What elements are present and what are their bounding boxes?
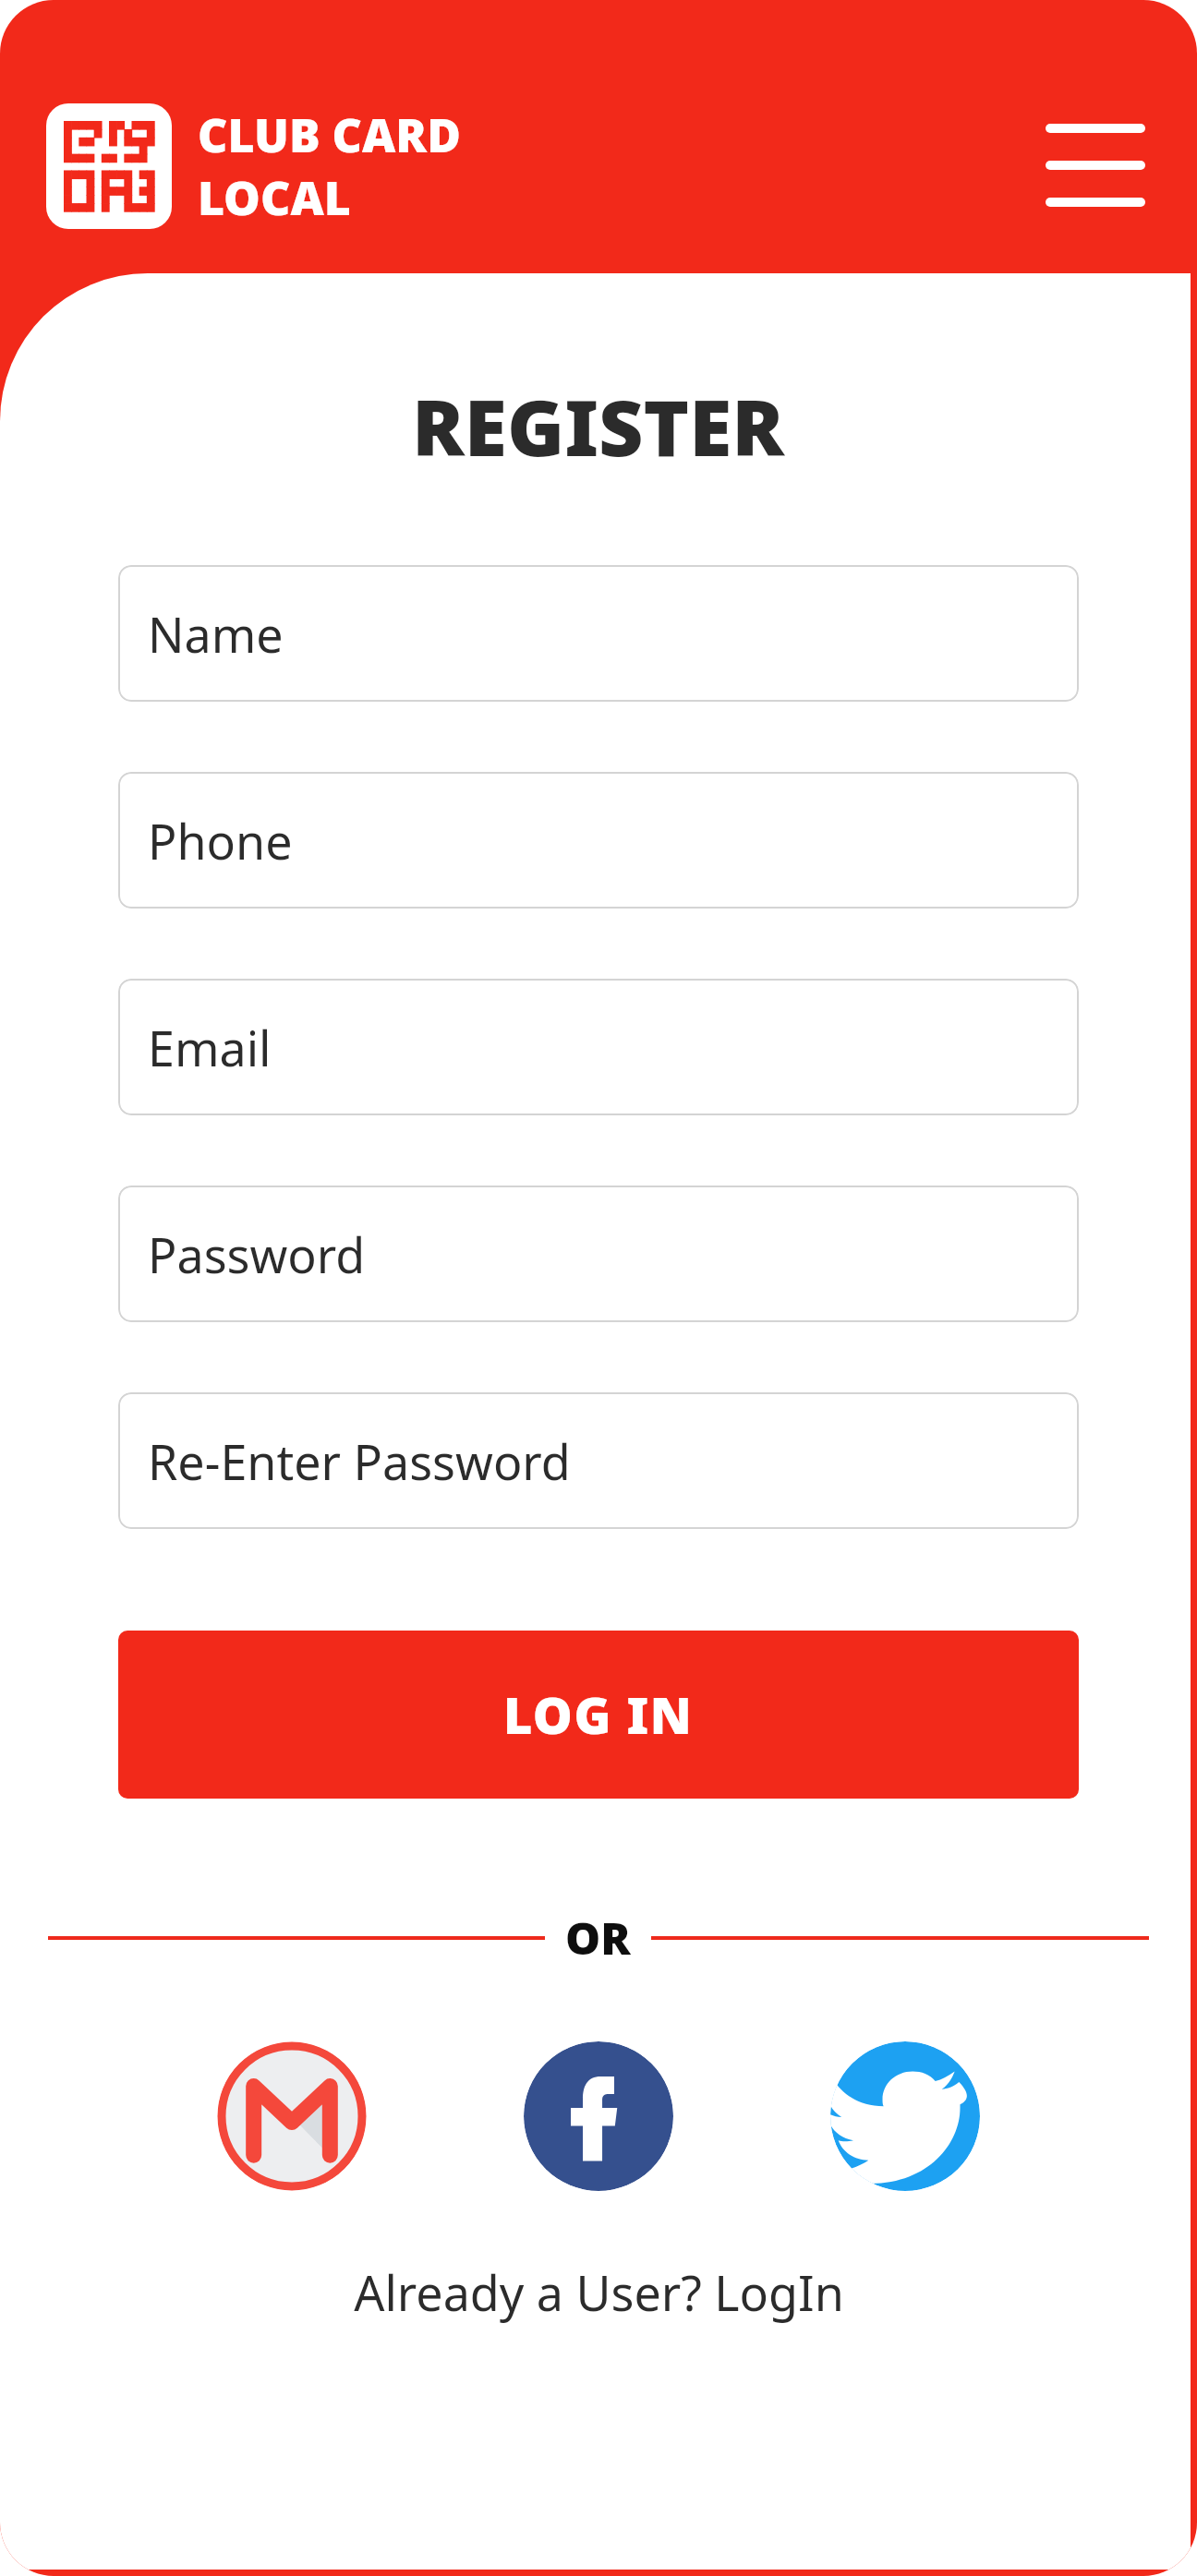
staticText: CLUB CARD <box>198 103 461 166</box>
button[interactable]: Phone <box>118 772 1079 909</box>
button[interactable]: Sign in with Gmail <box>217 2041 367 2191</box>
button[interactable]: Already a User? LogIn <box>354 2259 844 2325</box>
button[interactable]: Password <box>118 1186 1079 1322</box>
button[interactable]: Sign in with Facebook <box>524 2041 673 2191</box>
staticText: REGISTER <box>412 373 785 478</box>
button[interactable]: Re-Enter Password <box>118 1392 1079 1529</box>
button[interactable]: LOG IN <box>118 1631 1079 1799</box>
button[interactable]: Email <box>118 979 1079 1115</box>
staticText: Phone <box>148 808 293 873</box>
staticText: OR <box>565 1908 631 1968</box>
staticText: Re-Enter Password <box>148 1428 571 1494</box>
staticText: LOG IN <box>503 1680 694 1749</box>
staticText: Email <box>148 1015 272 1080</box>
button[interactable]: Name <box>118 565 1079 702</box>
staticText: LOCAL <box>198 166 351 229</box>
staticText: Already a User? LogIn <box>354 2259 844 2325</box>
staticText: Name <box>148 601 284 667</box>
button[interactable]: Sign in with Twitter <box>830 2041 980 2191</box>
staticText: Password <box>148 1222 366 1287</box>
button[interactable]: Menu <box>1046 111 1145 203</box>
